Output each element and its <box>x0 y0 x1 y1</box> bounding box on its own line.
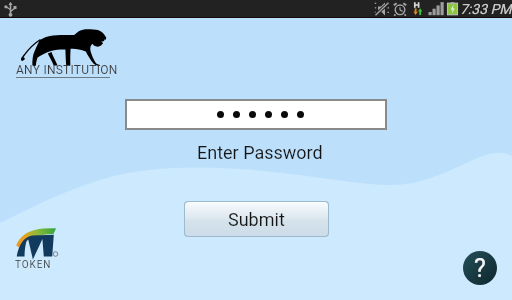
staticText: 7:33 PM <box>460 1 512 17</box>
staticText: Enter Password <box>197 142 323 163</box>
button[interactable]: Help <box>463 251 497 285</box>
staticText: ANY INSTITUTION <box>16 63 118 77</box>
button[interactable]: Password field <box>127 101 385 128</box>
button[interactable]: Submit <box>185 202 328 236</box>
staticText: TOKEN <box>15 259 52 271</box>
staticText: ? <box>474 254 486 283</box>
staticText: Submit <box>228 209 285 230</box>
